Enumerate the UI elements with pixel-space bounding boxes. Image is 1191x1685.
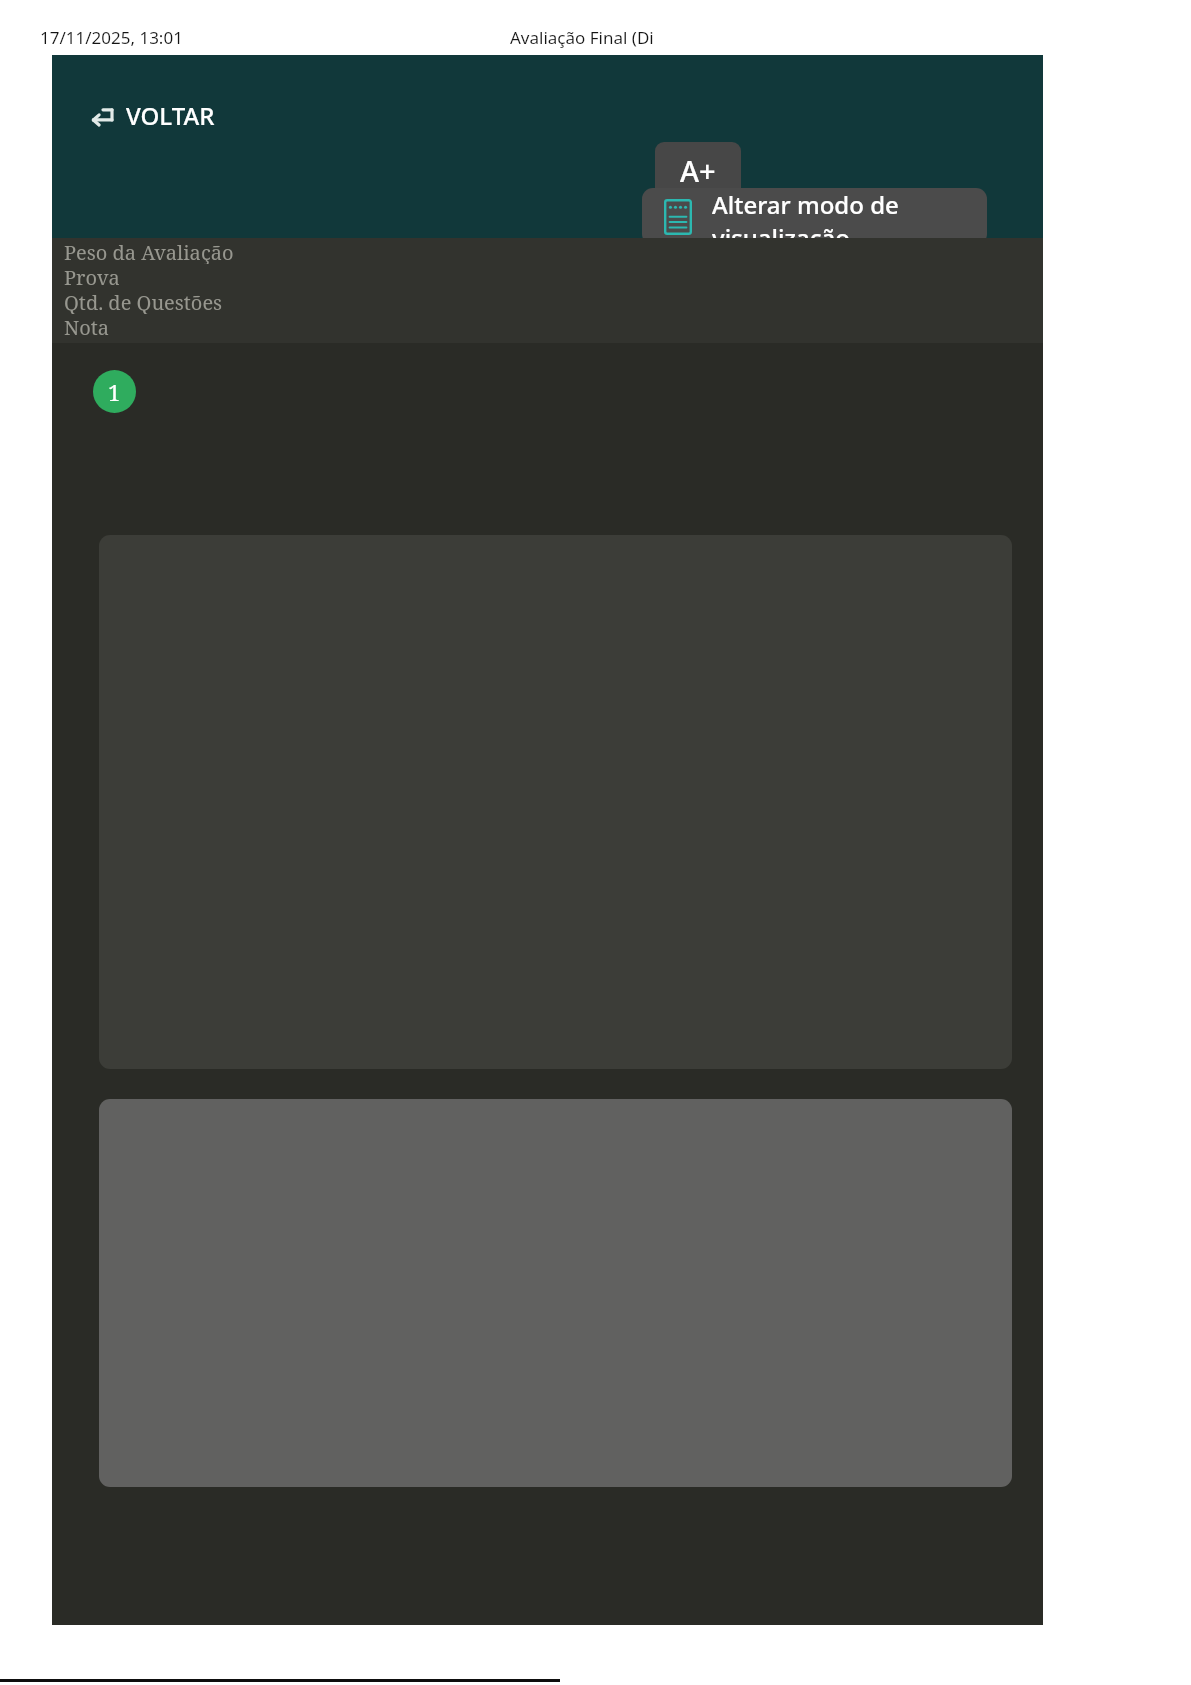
staticText: 1 <box>108 377 121 407</box>
other: Alterar modo de visualização <box>664 199 692 235</box>
staticText: Alterar modo de visualização <box>712 188 987 245</box>
staticText: VOLTAR <box>126 99 215 132</box>
staticText: Prova <box>64 264 120 289</box>
button[interactable]: 1 <box>93 370 136 413</box>
staticText: Qtd. de Questões <box>64 289 223 314</box>
button[interactable]: A+ <box>655 142 741 198</box>
button[interactable]: VOLTAR <box>82 93 221 138</box>
staticText: A+ <box>680 151 716 190</box>
staticText: Nota <box>64 314 110 339</box>
staticText: Avaliação Final (Di <box>510 26 654 49</box>
staticText: 17/11/2025, 13:01 <box>40 26 183 49</box>
staticText: Peso da Avaliação <box>64 239 234 264</box>
button[interactable]: Alterar modo de visualização <box>642 188 987 245</box>
